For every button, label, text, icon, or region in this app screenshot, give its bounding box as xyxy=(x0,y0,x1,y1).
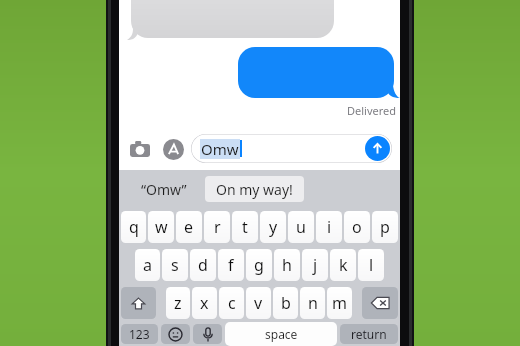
button[interactable]: On my way! xyxy=(205,176,304,202)
button[interactable]: a xyxy=(135,249,160,281)
button[interactable]: i xyxy=(316,211,342,243)
staticText: a xyxy=(143,254,152,276)
staticText: n xyxy=(308,292,318,314)
staticText: o xyxy=(352,216,362,238)
staticText: space xyxy=(265,326,298,342)
button[interactable]: s xyxy=(162,249,188,281)
staticText: e xyxy=(184,216,194,238)
button[interactable]: space xyxy=(225,322,337,346)
staticText: f xyxy=(228,254,234,276)
staticText: j xyxy=(313,254,318,276)
button[interactable]: k xyxy=(330,249,356,281)
button[interactable]: Shift xyxy=(121,287,156,319)
button[interactable]: h xyxy=(274,249,300,281)
staticText: x xyxy=(200,292,209,314)
staticText: u xyxy=(296,216,306,238)
button[interactable]: m xyxy=(327,287,352,319)
button[interactable] xyxy=(238,47,394,98)
staticText: z xyxy=(174,292,182,314)
staticText: return xyxy=(351,326,387,342)
button[interactable]: e xyxy=(176,211,202,243)
staticText: s xyxy=(171,254,179,276)
staticText: Delivered xyxy=(347,103,396,118)
button[interactable]: n xyxy=(300,287,325,319)
staticText: w xyxy=(155,216,168,238)
button[interactable]: “Omw” xyxy=(129,170,199,208)
staticText: k xyxy=(339,254,348,276)
button[interactable]: f xyxy=(218,249,244,281)
button[interactable]: x xyxy=(192,287,217,319)
button[interactable]: u xyxy=(288,211,314,243)
button[interactable]: g xyxy=(246,249,272,281)
button[interactable]: w xyxy=(148,211,174,243)
staticText: h xyxy=(282,254,292,276)
button[interactable]: z xyxy=(166,287,190,319)
button[interactable]: r xyxy=(204,211,230,243)
staticText: q xyxy=(129,216,139,238)
staticText: p xyxy=(380,216,390,238)
staticText: “Omw” xyxy=(141,180,187,199)
button[interactable]: Omw xyxy=(191,134,392,163)
button[interactable]: return xyxy=(340,324,398,344)
staticText: y xyxy=(269,216,278,238)
button[interactable]: t xyxy=(232,211,258,243)
staticText: d xyxy=(198,254,208,276)
button[interactable]: d xyxy=(190,249,216,281)
button[interactable]: Emoji xyxy=(161,324,190,344)
button[interactable]: Camera xyxy=(127,136,153,162)
button[interactable]: y xyxy=(260,211,286,243)
button[interactable]: Dictation xyxy=(193,324,222,344)
staticText: Omw xyxy=(201,139,239,159)
staticText: l xyxy=(369,254,374,276)
staticText: m xyxy=(332,292,347,314)
button[interactable]: Backspace xyxy=(362,287,398,319)
button[interactable]: j xyxy=(302,249,328,281)
staticText: t xyxy=(242,216,248,238)
button[interactable]: c xyxy=(219,287,244,319)
staticText: i xyxy=(327,216,332,238)
button[interactable]: Send xyxy=(365,136,390,161)
staticText: v xyxy=(254,292,263,314)
button[interactable]: o xyxy=(344,211,370,243)
button[interactable]: q xyxy=(121,211,146,243)
staticText: g xyxy=(254,254,264,276)
button[interactable]: p xyxy=(372,211,398,243)
button[interactable]: v xyxy=(246,287,271,319)
staticText: On my way! xyxy=(216,180,293,199)
staticText: 123 xyxy=(129,326,150,342)
staticText: r xyxy=(214,216,221,238)
button[interactable]: 123 xyxy=(121,324,158,344)
staticText: c xyxy=(228,292,236,314)
button[interactable]: App Store xyxy=(160,136,186,162)
staticText: b xyxy=(281,292,291,314)
button[interactable]: l xyxy=(358,249,384,281)
button[interactable]: b xyxy=(273,287,298,319)
